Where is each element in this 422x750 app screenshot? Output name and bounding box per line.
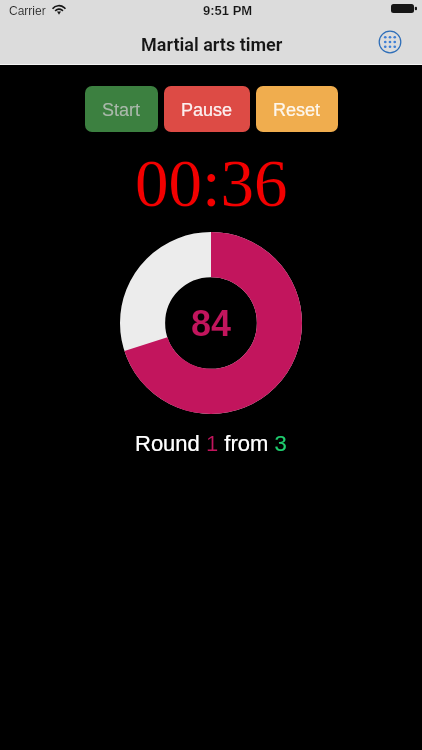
- button[interactable]: Pause: [164, 86, 250, 132]
- button[interactable]: Reset: [256, 86, 338, 132]
- button[interactable]: Start: [85, 86, 158, 132]
- staticText: 00:36: [135, 146, 288, 220]
- staticText: Carrier: [9, 4, 46, 17]
- button[interactable]: Menu: [374, 26, 406, 58]
- staticText: Pause: [181, 100, 233, 120]
- staticText: 9:51 PM: [203, 3, 253, 18]
- staticText: 84: [191, 303, 232, 343]
- staticText: Reset: [273, 100, 321, 120]
- staticText: Start: [102, 100, 141, 120]
- staticText: Round 1 from 3: [135, 431, 287, 456]
- staticText: Martial arts timer: [141, 34, 283, 55]
